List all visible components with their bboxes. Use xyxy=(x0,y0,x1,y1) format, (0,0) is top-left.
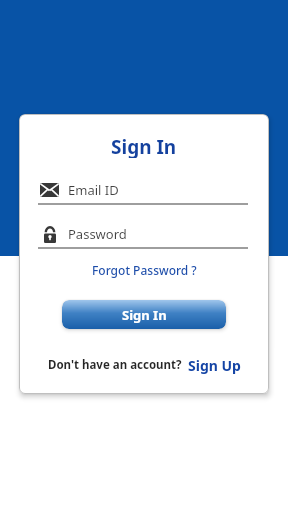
staticText: Sign In xyxy=(111,134,177,158)
staticText: Email ID xyxy=(68,181,119,199)
staticText: Forgot Password ? xyxy=(92,262,197,278)
button[interactable]: Sign Up xyxy=(188,356,241,375)
button[interactable]: Forgot Password ? xyxy=(19,261,269,279)
staticText: Password xyxy=(68,225,127,243)
staticText: Sign In xyxy=(122,306,167,324)
staticText: Don't have an account? xyxy=(48,357,182,373)
button[interactable]: Sign In xyxy=(62,300,226,329)
staticText: Sign Up xyxy=(188,356,241,375)
